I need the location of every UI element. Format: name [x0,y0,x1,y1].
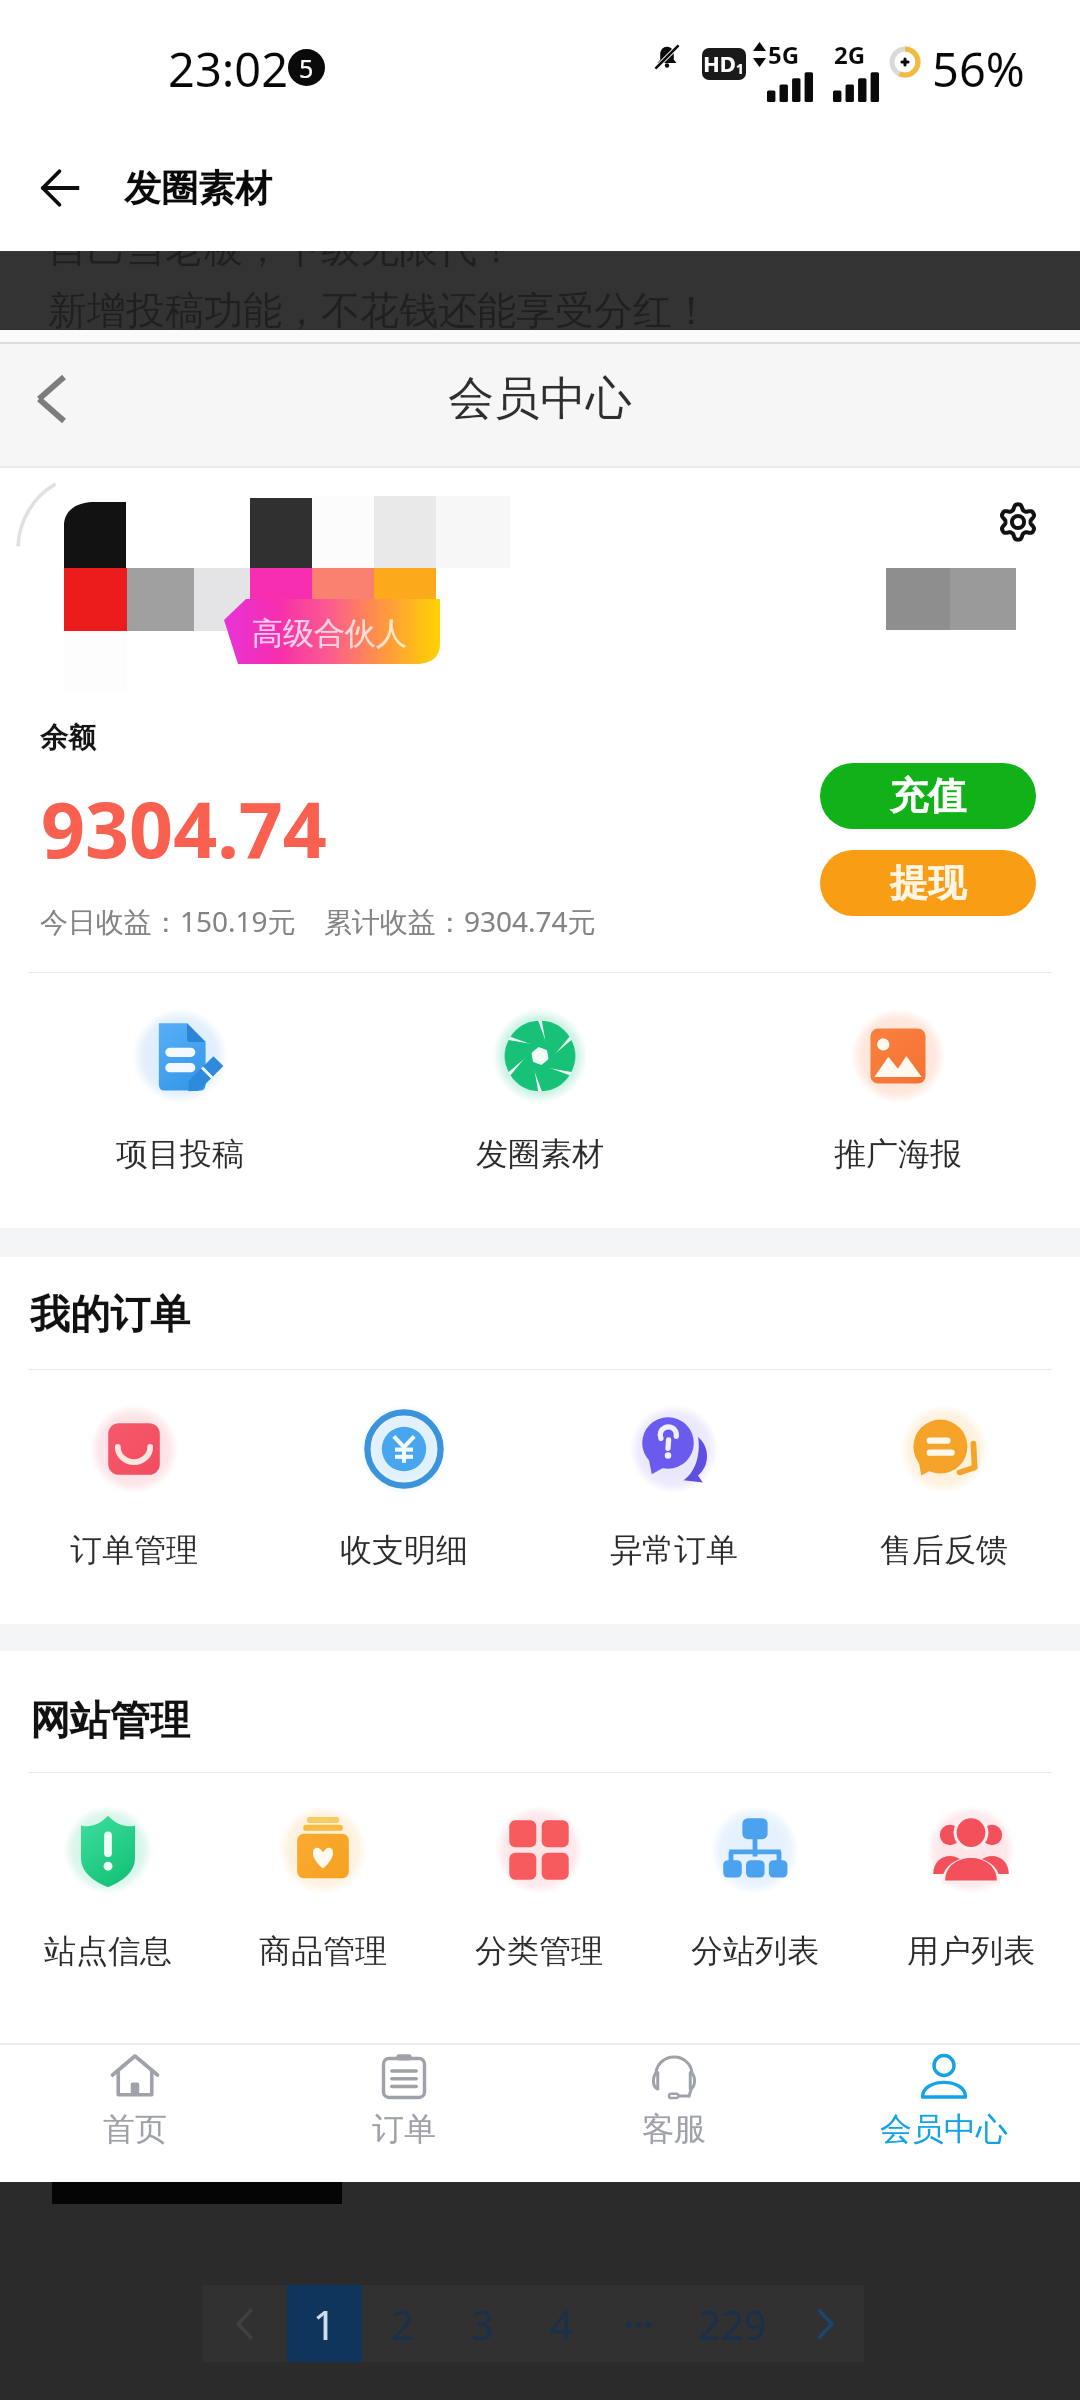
staticText: 推广海报 [834,1134,962,1174]
button[interactable]: 用户列表 [866,1790,1076,1971]
staticText: 会员中心 [448,370,632,428]
staticText: 229 [698,2297,767,2351]
button[interactable]: 发圈素材 [410,992,670,1174]
button[interactable]: 分类管理 [434,1790,644,1971]
staticText: 我的订单 [30,1289,190,1339]
button[interactable]: 分站列表 [650,1790,860,1971]
staticText: 收支明细 [340,1530,468,1570]
button[interactable]: 3 [442,2285,522,2362]
staticText: 56% [932,37,1025,101]
staticText: 订单管理 [70,1530,198,1570]
staticText: 分站列表 [691,1931,819,1971]
button[interactable]: 订单 [269,2051,539,2190]
staticText: 发圈素材 [476,1134,604,1174]
staticText: 客服 [642,2109,706,2149]
staticText: 项目投稿 [116,1134,244,1174]
staticText: 首页 [103,2109,167,2149]
button[interactable]: 229 [678,2285,786,2362]
staticText: 售后反馈 [880,1530,1008,1570]
button[interactable]: 商品管理 [218,1790,428,1971]
staticText: 1 [736,59,745,78]
button[interactable]: 2 [362,2285,442,2362]
staticText: 2 [391,2297,414,2351]
button[interactable] [786,2285,864,2362]
staticText: 分类管理 [475,1931,603,1971]
staticText: 异常订单 [610,1530,738,1570]
staticText: 提现 [890,859,966,907]
staticText: 用户列表 [907,1931,1035,1971]
staticText: 发圈素材 [124,165,272,212]
staticText: 余额 [40,720,96,755]
button[interactable]: 站点信息 [3,1790,213,1971]
button[interactable]: 售后反馈 [839,1389,1049,1570]
staticText: 站点信息 [44,1931,172,1971]
staticText: 5 [299,51,314,85]
staticText: HD [703,48,736,78]
staticText: 9304.74 [41,776,327,881]
button[interactable]: 提现 [820,850,1036,916]
button[interactable]: Back [12,358,94,440]
button[interactable]: 首页 [0,2051,270,2190]
staticText: 自己当老板，下级无限代！ [48,251,516,273]
staticText: 2G [834,38,866,71]
button[interactable]: 4 [522,2285,600,2362]
button[interactable]: 订单管理 [29,1389,239,1570]
button[interactable]: Settings [976,480,1060,564]
staticText: 3 [471,2297,494,2351]
staticText: 23:02 [168,37,289,101]
staticText: 高级合伙人 [252,614,407,653]
button[interactable]: 充值 [820,763,1036,829]
staticText: 订单 [372,2109,436,2149]
button[interactable]: 会员中心 [809,2051,1079,2190]
staticText: 累计收益：9304.74元 [324,902,596,940]
staticText: 5G [768,38,800,71]
button[interactable]: 收支明细 [299,1389,509,1570]
staticText: 充值 [890,772,966,820]
staticText: 1 [313,2297,336,2351]
staticText: 新增投稿功能，不花钱还能享受分红！ [48,286,711,329]
button[interactable]: 异常订单 [569,1389,779,1570]
staticText: ••• [624,2306,654,2341]
staticText: 会员中心 [880,2109,1008,2149]
button[interactable]: 1 [287,2285,362,2362]
staticText: 网站管理 [30,1695,190,1745]
button[interactable]: 客服 [539,2051,809,2190]
staticText: 商品管理 [259,1931,387,1971]
button[interactable]: 推广海报 [768,992,1028,1174]
staticText: 今日收益：150.19元 [40,902,296,940]
staticText: 4 [550,2297,573,2351]
button[interactable]: Back [22,149,100,227]
button[interactable]: 项目投稿 [50,992,310,1174]
